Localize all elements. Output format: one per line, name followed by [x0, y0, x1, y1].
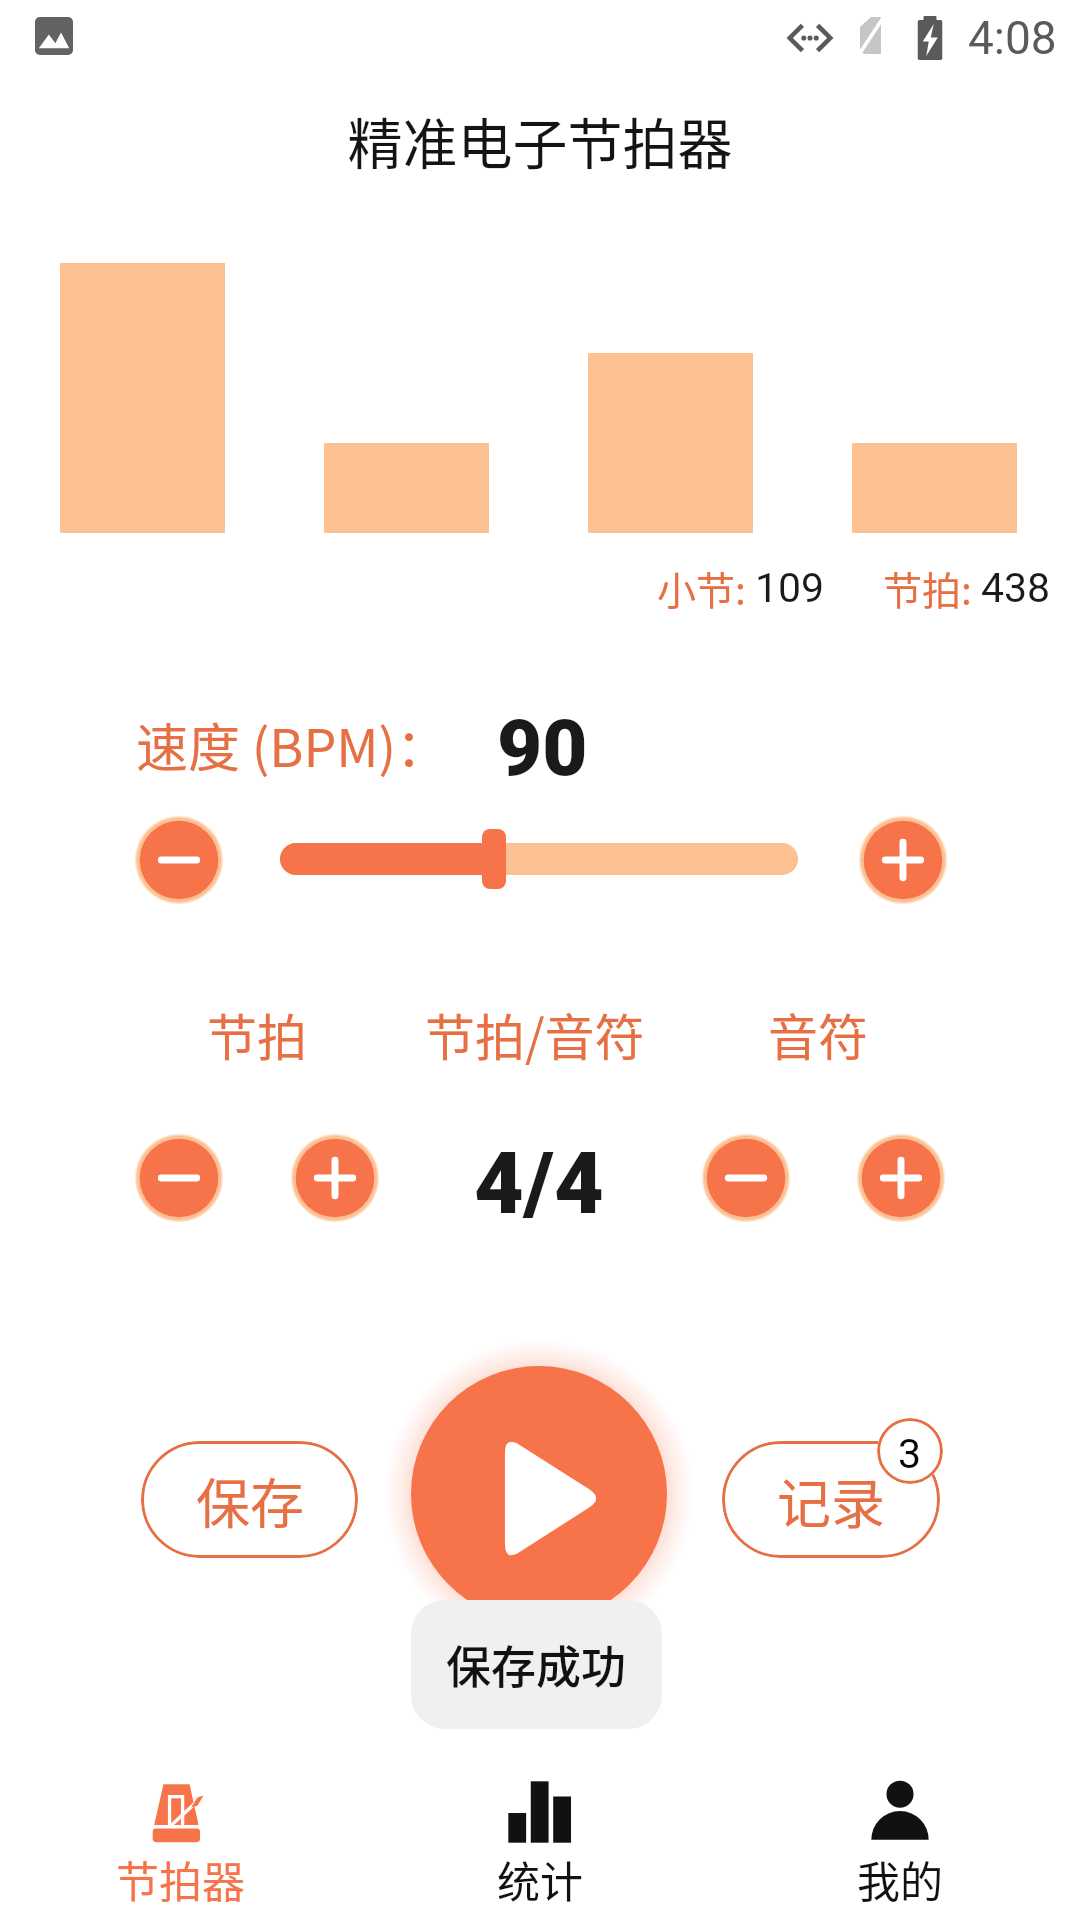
button[interactable]: 统计 [360, 1760, 720, 1920]
staticText: 速度 (BPM)： [136, 707, 449, 782]
button[interactable]: Play [411, 1366, 667, 1622]
staticText: 精准电子节拍器 [0, 100, 1080, 180]
staticText: 438 [981, 564, 1051, 612]
staticText: 我的 [857, 1848, 943, 1910]
button[interactable]: 我的 [720, 1760, 1080, 1920]
staticText: 记录 [777, 1461, 885, 1539]
staticText: 4:08 [968, 11, 1057, 65]
staticText: 保存 [196, 1461, 304, 1539]
staticText: 节拍: [883, 560, 981, 616]
button[interactable]: Decrease note value [701, 1133, 791, 1223]
button[interactable]: 记录 [722, 1441, 940, 1558]
staticText: 节拍/音符 [425, 998, 645, 1070]
button[interactable]: 保存 [141, 1441, 358, 1558]
button[interactable]: Decrease tempo [134, 815, 224, 905]
button[interactable]: Increase tempo [858, 815, 948, 905]
staticText: 小节: [657, 560, 755, 616]
staticText: 统计 [497, 1848, 583, 1910]
staticText: 音符 [768, 998, 868, 1070]
staticText: 节拍 [207, 998, 307, 1070]
staticText: 节拍器 [116, 1848, 245, 1910]
button[interactable]: Increase note value [856, 1133, 946, 1223]
staticText: 4/4 [474, 1133, 604, 1234]
staticText: 保存成功 [446, 1632, 627, 1697]
staticText: 109 [755, 564, 825, 612]
button[interactable]: Increase beats [290, 1133, 380, 1223]
button[interactable]: Decrease beats [134, 1133, 224, 1223]
button[interactable]: 节拍器 [0, 1760, 360, 1920]
staticText: 90 [497, 703, 588, 794]
staticText: 3 [898, 1430, 922, 1478]
